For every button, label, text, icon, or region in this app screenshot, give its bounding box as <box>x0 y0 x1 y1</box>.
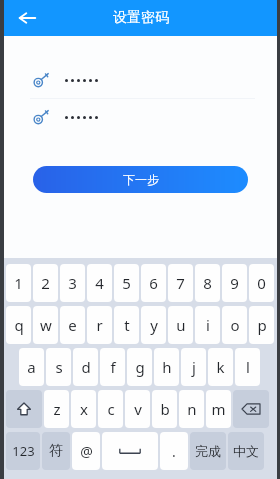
button[interactable]: 符 <box>42 432 70 470</box>
staticText: 2 <box>41 273 50 293</box>
button[interactable]: 2 <box>33 264 58 302</box>
button[interactable]: i <box>195 306 220 344</box>
staticText: 5 <box>122 273 131 293</box>
staticText: w <box>40 315 52 335</box>
staticText: 0 <box>257 273 266 293</box>
staticText: 4 <box>95 273 104 293</box>
staticText: k <box>216 357 225 377</box>
staticText: d <box>81 357 91 377</box>
button[interactable]: 0 <box>249 264 274 302</box>
staticText: 下一步 <box>123 172 159 187</box>
button[interactable]: j <box>181 348 206 386</box>
button[interactable]: 5 <box>114 264 139 302</box>
button[interactable] <box>233 390 269 428</box>
button[interactable]: 6 <box>141 264 166 302</box>
staticText: p <box>257 315 267 335</box>
button[interactable]: r <box>87 306 112 344</box>
staticText: q <box>14 315 24 335</box>
staticText: h <box>162 357 172 377</box>
button[interactable]: q <box>6 306 31 344</box>
button[interactable]: 123 <box>6 432 40 470</box>
button[interactable]: p <box>249 306 274 344</box>
staticText: y <box>150 315 158 335</box>
button[interactable]: e <box>60 306 85 344</box>
staticText: f <box>110 357 116 377</box>
staticText: u <box>176 315 186 335</box>
button[interactable]: y <box>141 306 166 344</box>
button[interactable]: a <box>19 348 44 386</box>
staticText: 9 <box>230 273 239 293</box>
staticText: c <box>107 399 115 419</box>
button[interactable]: s <box>46 348 71 386</box>
staticText: l <box>246 357 250 377</box>
button[interactable]: 7 <box>168 264 193 302</box>
button[interactable]: n <box>179 390 204 428</box>
staticText: a <box>27 357 36 377</box>
button[interactable] <box>4 62 277 98</box>
staticText: e <box>68 315 77 335</box>
staticText: i <box>206 315 210 335</box>
button[interactable]: f <box>100 348 125 386</box>
staticText: m <box>211 399 226 419</box>
staticText: b <box>160 399 170 419</box>
button[interactable]: g <box>127 348 152 386</box>
button[interactable]: h <box>154 348 179 386</box>
staticText: 中文 <box>233 443 259 459</box>
button[interactable]: 下一步 <box>33 166 248 193</box>
button[interactable]: 9 <box>222 264 247 302</box>
staticText: j <box>192 357 196 377</box>
button[interactable] <box>6 390 42 428</box>
button[interactable]: b <box>152 390 177 428</box>
button[interactable]: x <box>71 390 96 428</box>
button[interactable]: k <box>208 348 233 386</box>
staticText: @ <box>80 442 93 461</box>
button[interactable] <box>4 99 277 135</box>
button[interactable]: 4 <box>87 264 112 302</box>
staticText: 8 <box>203 273 212 293</box>
staticText: 设置密码 <box>113 9 169 27</box>
staticText: g <box>135 357 145 377</box>
button[interactable]: 8 <box>195 264 220 302</box>
staticText: 3 <box>68 273 77 293</box>
staticText: t <box>124 315 130 335</box>
button[interactable]: 3 <box>60 264 85 302</box>
staticText: 符 <box>49 442 63 460</box>
button[interactable]: t <box>114 306 139 344</box>
button[interactable]: d <box>73 348 98 386</box>
staticText: x <box>80 399 88 419</box>
staticText: z <box>53 399 61 419</box>
button[interactable]: c <box>98 390 123 428</box>
button[interactable]: v <box>125 390 150 428</box>
button[interactable]: l <box>235 348 260 386</box>
staticText: . <box>172 442 176 461</box>
button[interactable]: 完成 <box>190 432 226 470</box>
staticText: 123 <box>12 442 35 460</box>
button[interactable]: Back <box>10 1 44 35</box>
staticText: r <box>96 315 103 335</box>
staticText: v <box>134 399 142 419</box>
staticText: s <box>55 357 63 377</box>
staticText: 7 <box>176 273 185 293</box>
staticText: 6 <box>149 273 158 293</box>
button[interactable] <box>102 432 158 470</box>
button[interactable]: z <box>44 390 69 428</box>
staticText: 1 <box>14 273 23 293</box>
button[interactable]: u <box>168 306 193 344</box>
button[interactable]: w <box>33 306 58 344</box>
staticText: o <box>230 315 240 335</box>
staticText: n <box>187 399 197 419</box>
button[interactable]: m <box>206 390 231 428</box>
button[interactable]: 1 <box>6 264 31 302</box>
button[interactable]: 中文 <box>228 432 264 470</box>
staticText: 完成 <box>195 443 221 459</box>
button[interactable]: o <box>222 306 247 344</box>
button[interactable]: . <box>160 432 188 470</box>
button[interactable]: @ <box>72 432 100 470</box>
